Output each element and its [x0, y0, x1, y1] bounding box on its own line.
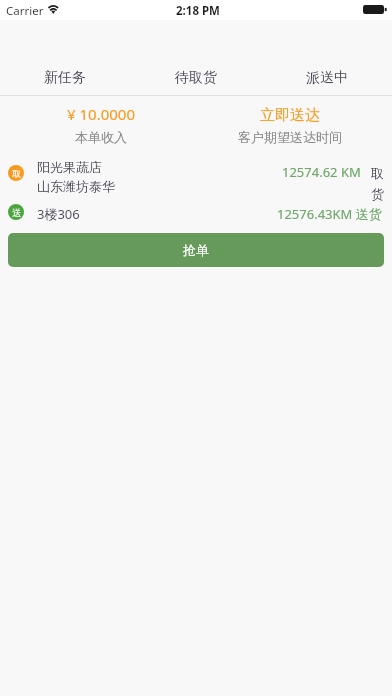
button[interactable]: 派送中	[261, 20, 392, 95]
button[interactable]: 待取货	[130, 20, 261, 95]
staticText: Carrier	[6, 3, 44, 19]
staticText: ¥ 10.0000	[67, 104, 135, 124]
staticText: 3楼306	[37, 205, 80, 223]
staticText: 抢单	[183, 242, 209, 258]
staticText: 取货	[371, 165, 385, 203]
staticText: 新任务	[44, 69, 86, 87]
staticText: 取	[12, 168, 21, 179]
staticText: 阳光果蔬店	[37, 159, 102, 175]
staticText: 2:18 PM	[176, 3, 220, 19]
staticText: 送	[12, 207, 21, 218]
other: Battery	[363, 5, 387, 14]
button[interactable]: 抢单	[8, 233, 384, 267]
staticText: 立即送达	[260, 106, 320, 125]
staticText: 派送中	[306, 69, 348, 87]
staticText: 待取货	[175, 69, 217, 87]
staticText: 山东潍坊泰华	[37, 178, 115, 194]
staticText: 客户期望送达时间	[238, 129, 342, 145]
other: Wi-Fi	[47, 3, 60, 14]
staticText: 本单收入	[75, 129, 127, 145]
button[interactable]: 新任务	[0, 20, 130, 95]
staticText: 12576.43KM 送货	[277, 205, 382, 223]
staticText: 12574.62 KM	[282, 163, 361, 181]
